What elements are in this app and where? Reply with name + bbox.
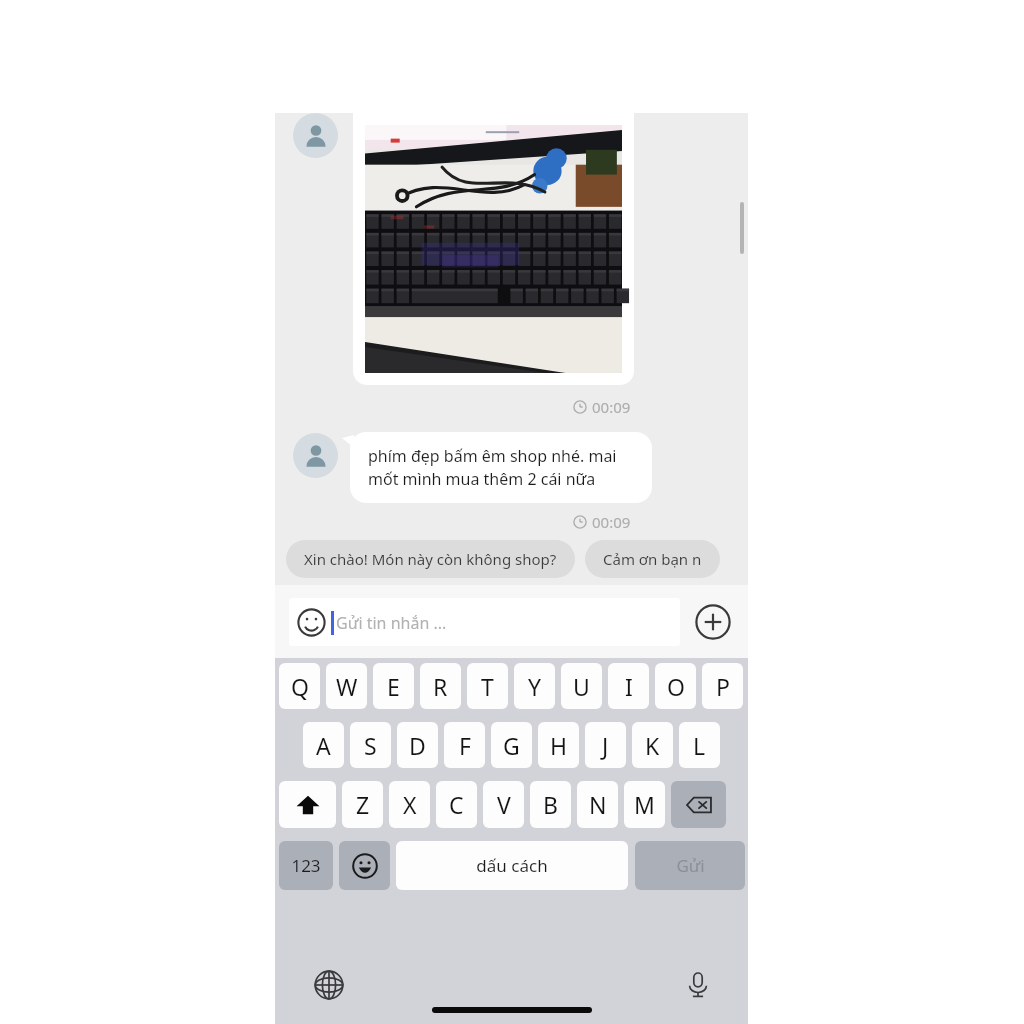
button[interactable]: A [303, 722, 344, 768]
staticText: 00:09 [592, 512, 631, 532]
staticText: Cảm ơn bạn n [603, 549, 702, 569]
button[interactable] [353, 99, 634, 385]
button[interactable]: Backspace [671, 781, 726, 828]
button[interactable]: U [561, 663, 602, 709]
staticText: L [693, 730, 706, 761]
button[interactable]: B [530, 781, 571, 828]
button[interactable]: F [444, 722, 485, 768]
button[interactable]: G [491, 722, 532, 768]
button[interactable]: 123 [279, 841, 333, 890]
staticText: R [433, 671, 448, 702]
staticText: W [336, 671, 358, 702]
staticText: M [634, 789, 655, 820]
staticText: Z [356, 789, 370, 820]
button[interactable]: I [608, 663, 649, 709]
button[interactable]: J [585, 722, 626, 768]
button[interactable]: V [483, 781, 524, 828]
staticText: 00:09 [592, 397, 631, 417]
staticText: P [716, 671, 730, 702]
button[interactable]: L [679, 722, 720, 768]
staticText: T [481, 671, 494, 702]
staticText: G [503, 730, 520, 761]
button[interactable]: T [467, 663, 508, 709]
staticText: dấu cách [476, 854, 548, 877]
other: Avatar [293, 113, 338, 158]
button[interactable]: D [397, 722, 438, 768]
button[interactable]: C [436, 781, 477, 828]
button[interactable]: N [577, 781, 618, 828]
button[interactable]: M [624, 781, 665, 828]
button[interactable]: Shift [279, 781, 336, 828]
button[interactable]: Add attachment [692, 601, 734, 643]
staticText: I [625, 671, 633, 702]
button[interactable]: Q [279, 663, 320, 709]
staticText: phím đẹp bấm êm shop nhé. mai mốt mình m… [368, 445, 617, 490]
staticText: Q [291, 671, 309, 702]
staticText: N [589, 789, 607, 820]
button[interactable]: Gửi tin nhắn ... [289, 598, 680, 646]
staticText: X [403, 789, 417, 820]
button[interactable]: K [632, 722, 673, 768]
button[interactable]: W [326, 663, 367, 709]
staticText: U [573, 671, 590, 702]
staticText: D [409, 730, 426, 761]
button[interactable]: X [389, 781, 430, 828]
button[interactable]: Z [342, 781, 383, 828]
staticText: B [543, 789, 558, 820]
button[interactable]: R [420, 663, 461, 709]
staticText: Xin chào! Món này còn không shop? [304, 549, 557, 569]
button[interactable]: dấu cách [396, 841, 628, 890]
staticText: A [316, 730, 331, 761]
staticText: O [667, 671, 685, 702]
staticText: H [550, 730, 568, 761]
staticText: J [602, 730, 609, 761]
button[interactable]: P [702, 663, 743, 709]
staticText: Y [528, 671, 542, 702]
other: Avatar [293, 433, 338, 478]
button[interactable]: Y [514, 663, 555, 709]
button[interactable]: Cảm ơn bạn n [585, 540, 720, 578]
button[interactable]: Xin chào! Món này còn không shop? [286, 540, 575, 578]
button[interactable]: Change keyboard [309, 965, 349, 1005]
staticText: Gửi [676, 854, 705, 877]
staticText: F [459, 730, 471, 761]
staticText: K [645, 730, 660, 761]
staticText: Gửi tin nhắn ... [336, 612, 447, 634]
button[interactable]: E [373, 663, 414, 709]
button[interactable]: O [655, 663, 696, 709]
staticText: V [497, 789, 511, 820]
button[interactable]: H [538, 722, 579, 768]
staticText: 123 [291, 854, 321, 877]
staticText: S [364, 730, 377, 761]
button[interactable]: Gửi [635, 841, 745, 890]
button[interactable]: phím đẹp bấm êm shop nhé. mai mốt mình m… [350, 432, 652, 503]
button[interactable]: S [350, 722, 391, 768]
staticText: C [449, 789, 464, 820]
button[interactable]: Dictate [678, 965, 718, 1005]
button[interactable]: Emoji [339, 841, 390, 890]
staticText: E [387, 671, 400, 702]
